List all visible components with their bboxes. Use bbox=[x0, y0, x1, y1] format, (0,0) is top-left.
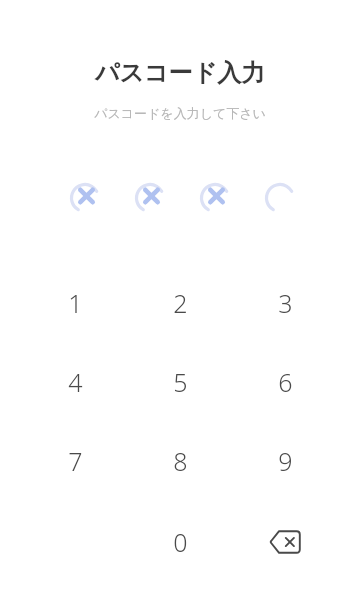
button[interactable]: 9 bbox=[237, 425, 333, 497]
button[interactable]: 4 bbox=[27, 346, 123, 418]
button[interactable]: 5 bbox=[132, 346, 228, 418]
staticText: パスコードを入力して下さい bbox=[0, 105, 360, 121]
staticText: 2 bbox=[173, 286, 188, 320]
button[interactable]: 3 bbox=[237, 267, 333, 339]
staticText: 9 bbox=[278, 444, 293, 478]
button[interactable]: 8 bbox=[132, 425, 228, 497]
staticText: 1 bbox=[68, 286, 83, 320]
button[interactable]: 0 bbox=[132, 506, 228, 578]
staticText: 5 bbox=[173, 365, 188, 399]
button[interactable]: 1 bbox=[27, 267, 123, 339]
button[interactable]: 7 bbox=[27, 425, 123, 497]
staticText: 0 bbox=[173, 525, 188, 559]
staticText: 4 bbox=[68, 365, 83, 399]
button[interactable]: Backspace bbox=[237, 506, 333, 578]
staticText: 6 bbox=[278, 365, 293, 399]
staticText: 3 bbox=[278, 286, 293, 320]
staticText: 8 bbox=[173, 444, 188, 478]
staticText: 7 bbox=[68, 444, 83, 478]
staticText: パスコード入力 bbox=[0, 58, 360, 88]
button[interactable]: 6 bbox=[237, 346, 333, 418]
button[interactable]: 2 bbox=[132, 267, 228, 339]
